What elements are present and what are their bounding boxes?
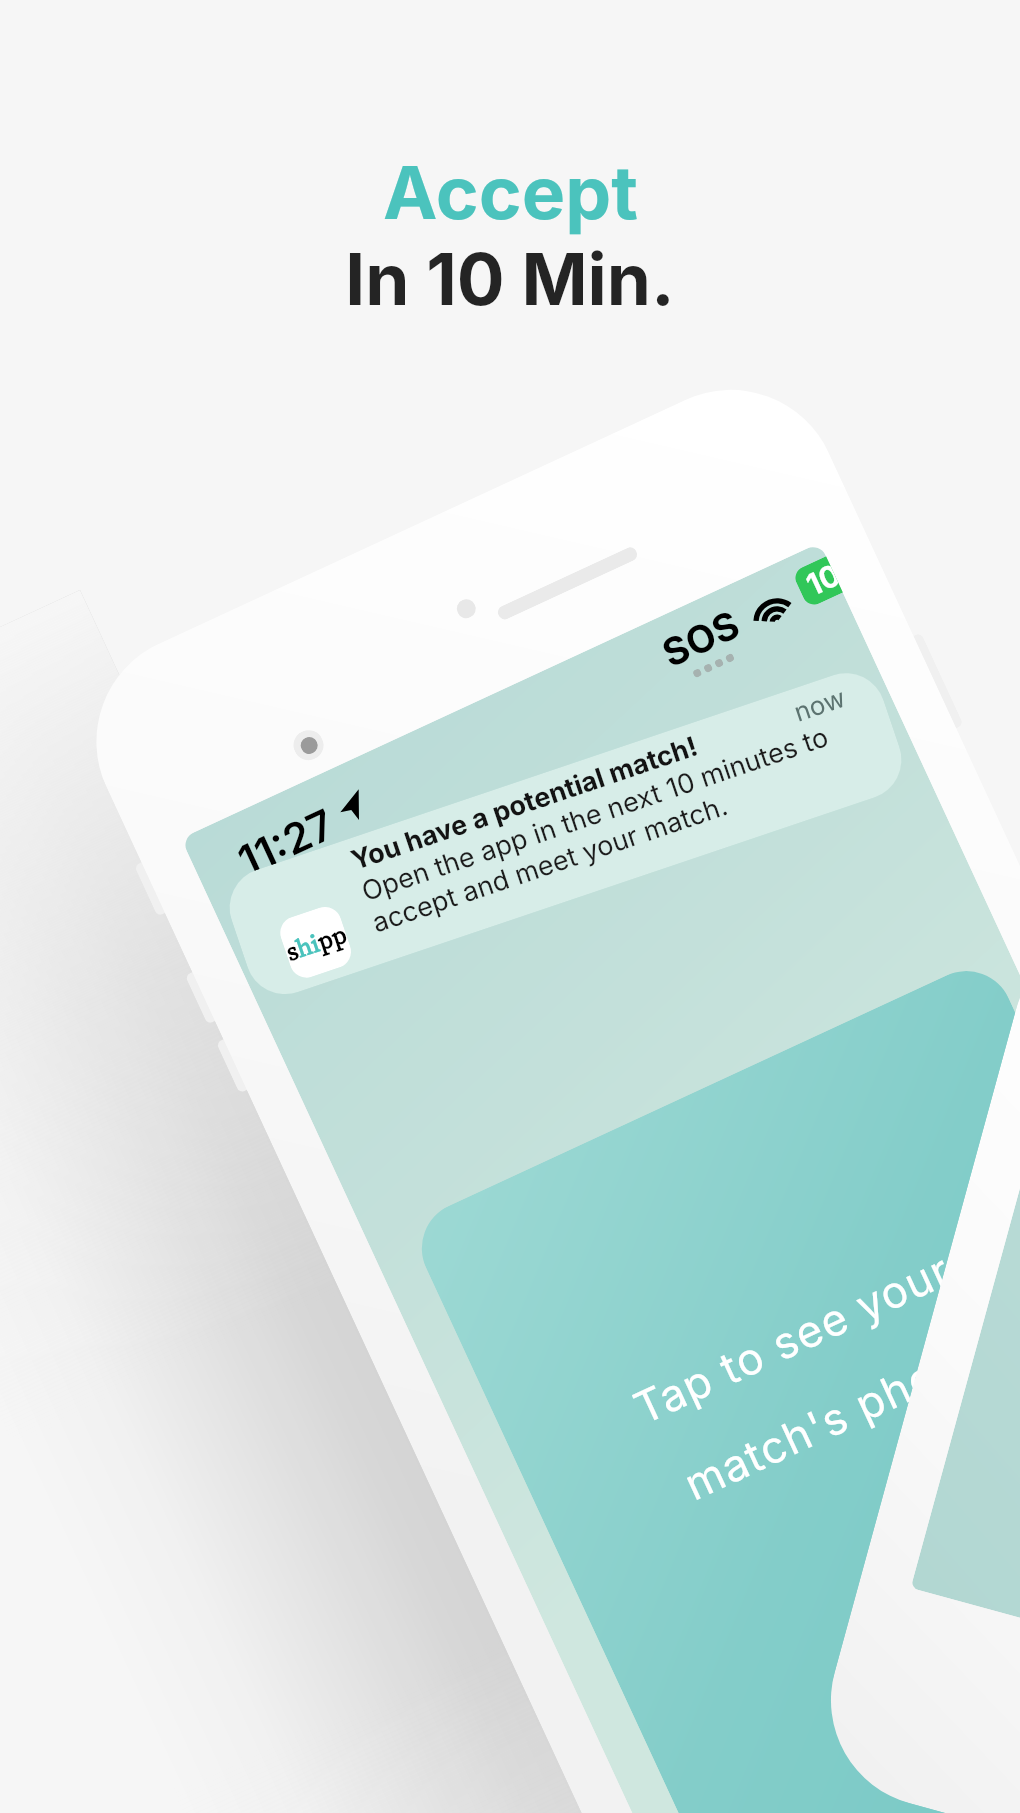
staticText: shipp	[278, 910, 354, 975]
staticText: now	[787, 676, 852, 733]
button[interactable]: shipp	[206, 595, 925, 1072]
staticText: In 10 Min.	[345, 236, 675, 322]
staticText: Tap to see your match's photo	[625, 1242, 997, 1517]
staticText: 100	[801, 558, 842, 603]
staticText: Accept	[383, 148, 638, 236]
staticText: SOS	[655, 601, 747, 676]
staticText: accept and meet your match.	[365, 752, 735, 976]
staticText: Open the app in the next 10 minutes to	[354, 672, 836, 956]
staticText: 11:27	[230, 798, 342, 886]
button[interactable]: Tap to see your match's photo	[406, 956, 1020, 1813]
staticText: You have a potential match!	[344, 694, 706, 913]
